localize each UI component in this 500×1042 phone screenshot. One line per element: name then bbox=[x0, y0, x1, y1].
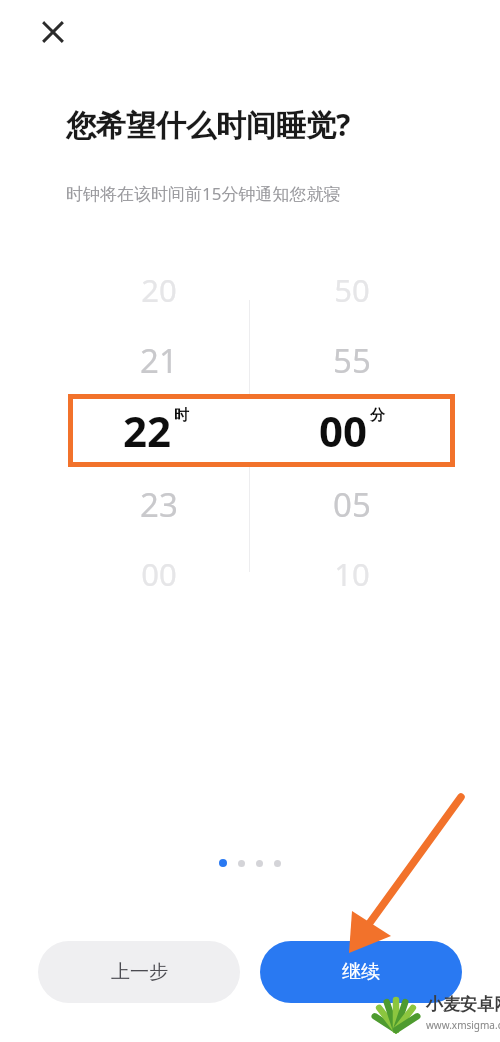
staticText: 10 bbox=[334, 553, 370, 595]
button[interactable]: Close bbox=[29, 8, 77, 56]
staticText: 00 bbox=[141, 553, 177, 595]
staticText: 分 bbox=[370, 406, 385, 425]
staticText: 50 bbox=[334, 269, 370, 311]
staticText: www.xmsigma.com bbox=[426, 1018, 500, 1032]
staticText: 20 bbox=[141, 269, 177, 311]
staticText: 00 bbox=[319, 402, 368, 459]
staticText: 上一步 bbox=[111, 960, 168, 984]
button[interactable]: 上一步 bbox=[38, 941, 240, 1003]
staticText: 时 bbox=[174, 406, 189, 425]
button[interactable] bbox=[68, 394, 455, 467]
staticText: 继续 bbox=[342, 960, 380, 984]
staticText: 21 bbox=[140, 338, 178, 383]
staticText: 05 bbox=[333, 482, 371, 527]
button[interactable]: 继续 bbox=[260, 941, 462, 1003]
staticText: 22 bbox=[123, 402, 172, 459]
staticText: 您希望什么时间睡觉? bbox=[66, 104, 456, 145]
staticText: 小麦安卓网 bbox=[426, 994, 500, 1015]
staticText: 时钟将在该时间前15分钟通知您就寝 bbox=[66, 182, 466, 205]
staticText: 23 bbox=[140, 482, 178, 527]
staticText: 55 bbox=[333, 338, 371, 383]
